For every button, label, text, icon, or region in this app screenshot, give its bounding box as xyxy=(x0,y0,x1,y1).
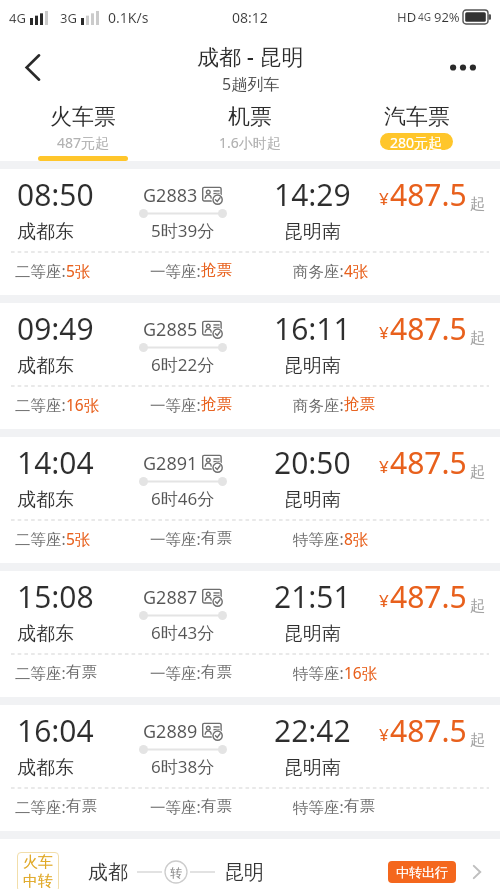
staticText: HD xyxy=(397,8,417,26)
staticText: 起 xyxy=(470,731,485,750)
staticText: 昆明南 xyxy=(284,220,341,244)
staticText: G2885 xyxy=(143,317,198,342)
staticText: 487.5 xyxy=(390,576,467,617)
staticText: 6时43分 xyxy=(151,621,215,644)
staticText: 22:42 xyxy=(274,710,351,751)
staticText: 16张 xyxy=(66,394,100,415)
staticText: ¥ xyxy=(379,723,389,746)
staticText: 起 xyxy=(470,195,485,214)
staticText: 转 xyxy=(170,865,182,880)
staticText: 21:51 xyxy=(274,576,351,617)
staticText: 3G xyxy=(60,9,77,27)
staticText: 6时46分 xyxy=(151,487,215,510)
staticText: 成都东 xyxy=(17,622,74,646)
staticText: 成都东 xyxy=(17,756,74,780)
staticText: 抢票 xyxy=(201,260,232,280)
button[interactable]: 08:50 xyxy=(0,169,500,295)
button[interactable]: 09:49 xyxy=(0,303,500,429)
staticText: 5张 xyxy=(66,260,91,281)
staticText: 4G xyxy=(418,10,431,24)
staticText: 487.5 xyxy=(390,308,467,349)
staticText: 一等座: xyxy=(150,662,201,683)
button[interactable]: Back xyxy=(0,34,66,95)
staticText: 汽车票 xyxy=(384,103,450,131)
staticText: 特等座: xyxy=(293,662,344,683)
staticText: 14:04 xyxy=(17,442,94,483)
staticText: 6时22分 xyxy=(151,353,215,376)
staticText: 二等座: xyxy=(15,662,66,683)
staticText: 昆明南 xyxy=(284,488,341,512)
staticText: 成都 - 昆明 xyxy=(197,41,304,71)
staticText: 1.6小时起 xyxy=(219,133,281,150)
staticText: 中转 xyxy=(23,872,53,889)
staticText: 5时39分 xyxy=(151,219,215,242)
staticText: 有票 xyxy=(66,796,97,816)
staticText: 商务座: xyxy=(293,260,344,281)
staticText: 商务座: xyxy=(293,394,344,415)
staticText: ¥ xyxy=(379,589,389,612)
staticText: 有票 xyxy=(344,796,375,816)
staticText: 二等座: xyxy=(15,260,66,281)
staticText: 280元起 xyxy=(390,133,443,150)
staticText: 有票 xyxy=(201,528,232,548)
staticText: 0.1K/s xyxy=(108,8,149,27)
staticText: 487元起 xyxy=(57,133,110,150)
button[interactable]: 汽车票 xyxy=(333,95,500,161)
button[interactable]: 火车票 xyxy=(0,95,166,161)
staticText: 中转出行 xyxy=(396,864,448,880)
button[interactable]: 14:04 xyxy=(0,437,500,563)
staticText: 起 xyxy=(470,329,485,348)
staticText: 一等座: xyxy=(150,394,201,415)
staticText: 14:29 xyxy=(274,174,351,215)
staticText: 成都 xyxy=(88,860,128,885)
button[interactable]: 16:04 xyxy=(0,705,500,831)
staticText: 昆明 xyxy=(224,860,264,885)
staticText: 92% xyxy=(434,8,460,26)
button[interactable]: More options xyxy=(426,34,500,95)
staticText: 4张 xyxy=(344,260,369,281)
button[interactable]: 15:08 xyxy=(0,571,500,697)
staticText: 起 xyxy=(470,463,485,482)
staticText: 6时38分 xyxy=(151,755,215,778)
staticText: G2887 xyxy=(143,585,198,610)
button[interactable]: 火车 xyxy=(0,839,500,889)
staticText: ¥ xyxy=(379,455,389,478)
staticText: 487.5 xyxy=(390,710,467,751)
staticText: G2883 xyxy=(143,183,198,208)
staticText: 487.5 xyxy=(390,442,467,483)
staticText: 有票 xyxy=(201,662,232,682)
staticText: 特等座: xyxy=(293,796,344,817)
button[interactable]: Open transfer options xyxy=(470,858,484,886)
staticText: 有票 xyxy=(66,662,97,682)
staticText: 4G xyxy=(9,9,26,27)
staticText: 成都东 xyxy=(17,354,74,378)
staticText: 15:08 xyxy=(17,576,94,617)
button[interactable]: 中转出行 xyxy=(388,861,456,883)
staticText: 16:04 xyxy=(17,710,94,751)
staticText: 09:49 xyxy=(17,308,94,349)
staticText: 二等座: xyxy=(15,796,66,817)
staticText: 16张 xyxy=(344,662,378,683)
button[interactable]: 机票 xyxy=(166,95,333,161)
staticText: 火车 xyxy=(23,853,53,872)
staticText: 机票 xyxy=(228,103,272,131)
staticText: 火车票 xyxy=(50,103,116,131)
staticText: 成都东 xyxy=(17,488,74,512)
staticText: 起 xyxy=(470,597,485,616)
staticText: 5趟列车 xyxy=(222,73,280,95)
staticText: 成都东 xyxy=(17,220,74,244)
staticText: G2889 xyxy=(143,719,198,744)
staticText: 08:50 xyxy=(17,174,94,215)
staticText: 16:11 xyxy=(274,308,351,349)
staticText: 一等座: xyxy=(150,528,201,549)
staticText: 特等座: xyxy=(293,528,344,549)
staticText: G2891 xyxy=(143,451,198,476)
staticText: 二等座: xyxy=(15,528,66,549)
staticText: ¥ xyxy=(379,321,389,344)
staticText: 二等座: xyxy=(15,394,66,415)
staticText: ¥ xyxy=(379,187,389,210)
staticText: 抢票 xyxy=(344,394,375,414)
staticText: 8张 xyxy=(344,528,369,549)
staticText: 昆明南 xyxy=(284,622,341,646)
staticText: 昆明南 xyxy=(284,354,341,378)
